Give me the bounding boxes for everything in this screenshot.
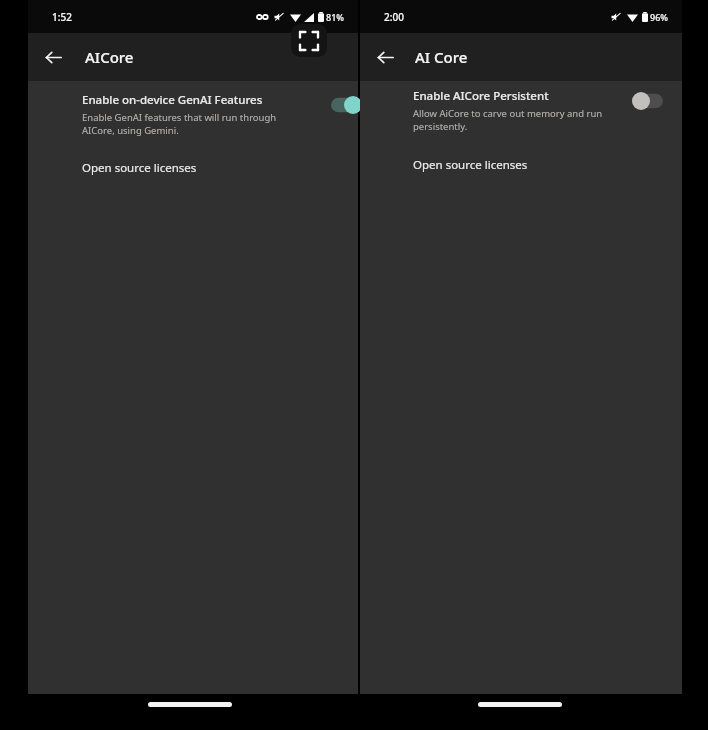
staticText: AICore	[85, 47, 134, 67]
button[interactable]: Back	[35, 39, 71, 75]
button[interactable]: Toggle	[632, 92, 663, 110]
button[interactable]: Open source licenses	[360, 152, 682, 178]
button[interactable]: Enable AICore Persistent	[360, 78, 682, 136]
staticText: 96%	[650, 11, 668, 23]
staticText: Allow AiCore to carve out memory and run…	[413, 107, 603, 133]
button[interactable]: Toggle	[331, 96, 362, 114]
button[interactable]: Fullscreen	[291, 24, 327, 57]
staticText: Open source licenses	[413, 157, 528, 173]
staticText: Open source licenses	[82, 160, 197, 176]
staticText: AI Core	[415, 47, 468, 67]
staticText: Enable AICore Persistent	[413, 88, 549, 104]
staticText: 1:52	[52, 10, 72, 24]
staticText: Enable on-device GenAI Features	[82, 92, 263, 108]
staticText: 2:00	[384, 10, 404, 24]
button[interactable]: Enable on-device GenAI Features	[28, 82, 358, 140]
button[interactable]: Open source licenses	[28, 155, 358, 181]
button[interactable]: Back	[367, 39, 403, 75]
staticText: 81%	[326, 11, 344, 23]
staticText: Enable GenAI features that will run thro…	[82, 111, 277, 137]
